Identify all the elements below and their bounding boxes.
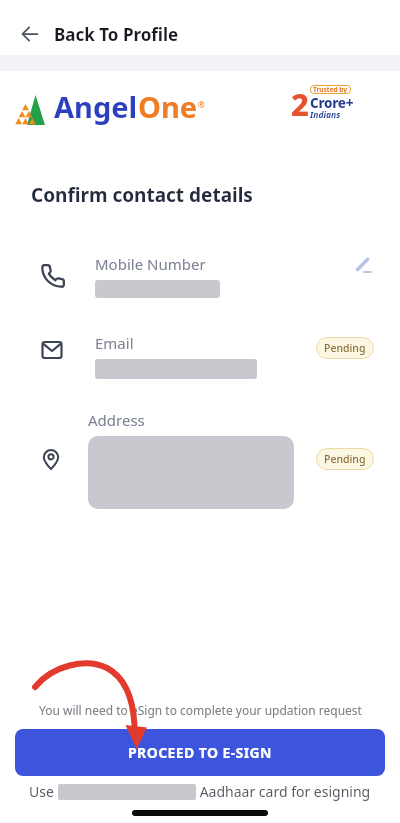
staticText: Mobile Number xyxy=(95,254,206,274)
button[interactable] xyxy=(355,256,372,273)
staticText: You will need to eSign to complete your … xyxy=(39,702,362,718)
staticText: Back To Profile xyxy=(54,23,179,46)
staticText: Address xyxy=(88,410,145,430)
staticText: Email xyxy=(95,333,134,353)
staticText: Trusted by xyxy=(313,85,348,94)
staticText: PROCEED TO E-SIGN xyxy=(128,743,272,762)
staticText: Angel xyxy=(54,87,138,126)
staticText: ® xyxy=(198,99,205,110)
button[interactable]: Back To Profile xyxy=(0,13,400,55)
staticText: Confirm contact details xyxy=(31,182,253,208)
staticText: Pending xyxy=(324,341,366,355)
staticText: Indians xyxy=(310,109,341,121)
staticText: Pending xyxy=(324,452,366,466)
staticText: Aadhaar card for esigning xyxy=(196,782,371,801)
button[interactable]: PROCEED TO E-SIGN xyxy=(15,729,385,776)
staticText: One xyxy=(138,87,198,126)
staticText: 2 xyxy=(291,83,309,125)
staticText: Use xyxy=(29,782,58,801)
staticText: Crore+ xyxy=(310,94,354,112)
